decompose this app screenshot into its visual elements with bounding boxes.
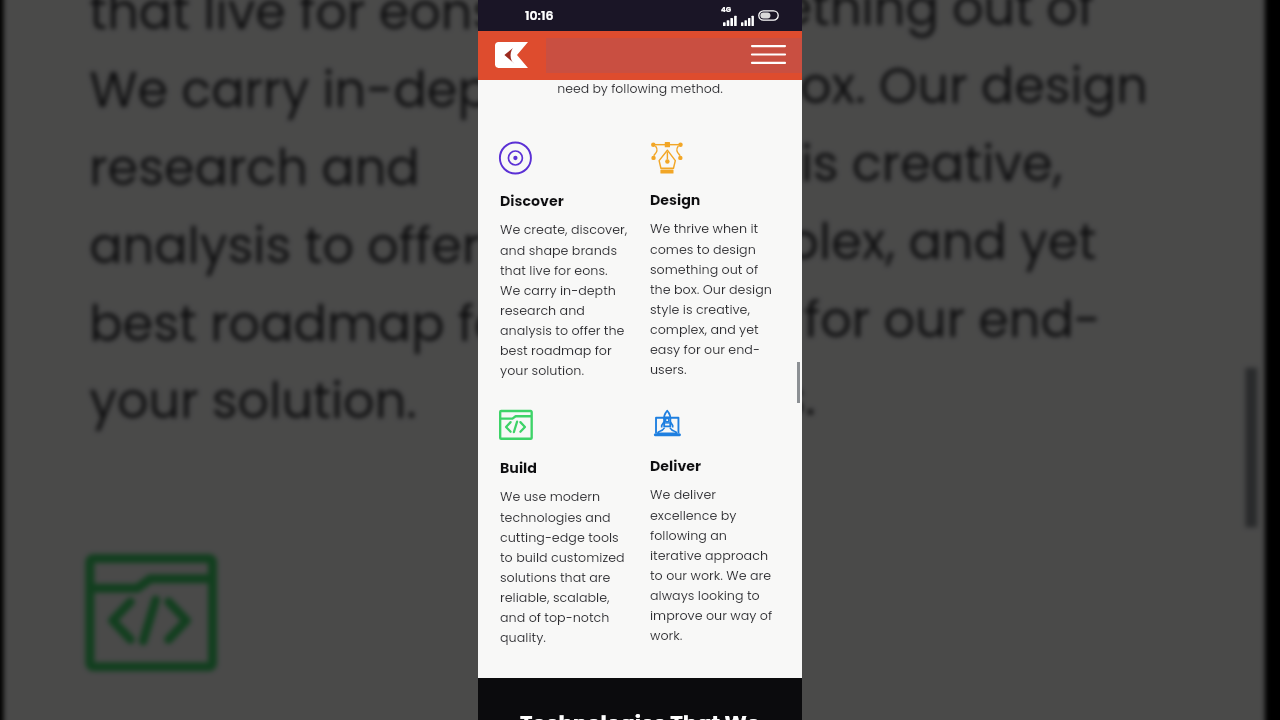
- button[interactable]: Home: [495, 42, 528, 68]
- staticText: We use modern technologies and cutting-e…: [500, 488, 625, 646]
- button[interactable]: Design: [673, 0, 1218, 430]
- staticText: 10:16: [525, 7, 554, 24]
- staticText: Discover: [500, 191, 564, 211]
- button[interactable]: Build: [500, 408, 640, 646]
- button[interactable]: Design: [650, 140, 790, 378]
- staticText: 4G: [721, 5, 732, 15]
- button[interactable]: Deliver: [673, 539, 1218, 720]
- staticText: We deliver excellence by following an it…: [650, 486, 773, 644]
- button[interactable]: Discover: [500, 141, 640, 379]
- button[interactable]: Deliver: [650, 406, 790, 644]
- staticText: Design: [650, 190, 701, 210]
- button[interactable]: Build: [89, 547, 634, 720]
- staticText: We thrive when it comes to design someth…: [673, 0, 1148, 430]
- staticText: need by following method.: [478, 80, 802, 97]
- staticText: Build: [500, 458, 537, 478]
- button[interactable]: Open navigation menu: [740, 37, 792, 74]
- staticText: We create, discover, and shape brands th…: [89, 0, 587, 434]
- staticText: Deliver: [650, 456, 702, 476]
- button[interactable]: Discover: [89, 0, 634, 434]
- staticText: Technologies That We: [478, 709, 802, 720]
- staticText: We thrive when it comes to design someth…: [650, 220, 772, 378]
- staticText: We create, discover, and shape brands th…: [500, 221, 628, 379]
